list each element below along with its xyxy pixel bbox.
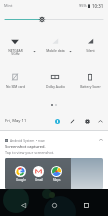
button[interactable]: Recents: [77, 196, 95, 214]
staticText: Mint: [4, 3, 13, 8]
staticText: Maps: [53, 178, 61, 182]
staticText: 10:31: [92, 3, 104, 9]
button[interactable]: Mobile data: [38, 37, 72, 52]
staticText: • now: [36, 138, 45, 142]
button[interactable]: Account: [52, 116, 62, 126]
staticText: 95%: [79, 3, 87, 8]
button[interactable]: Brightness: [0, 0, 108, 28]
button[interactable]: Silent: [73, 37, 107, 52]
staticText: NETGEAR 5GHz: [8, 48, 23, 56]
button[interactable]: No SIM card: [0, 73, 32, 88]
button[interactable]: Collapse notification: [98, 137, 104, 143]
button[interactable]: Edit: [67, 116, 77, 126]
button[interactable]: NETGEAR 5GHz: [0, 37, 32, 56]
staticText: Silent: [86, 48, 95, 52]
button[interactable]: Android System: [0, 130, 108, 189]
button[interactable]: Dolby Audio: [38, 73, 72, 88]
staticText: Android System: [10, 138, 35, 142]
staticText: Battery Saver: [80, 84, 101, 88]
staticText: Mobile data: [46, 48, 65, 52]
staticText: Dolby Audio: [46, 84, 65, 88]
staticText: Google: [16, 178, 26, 182]
staticText: No SIM card: [6, 84, 25, 88]
button[interactable]: Back: [14, 196, 32, 214]
button[interactable]: Home: [45, 196, 63, 214]
staticText: Tap to view your screenshot.: [5, 150, 55, 155]
button[interactable]: Collapse: [95, 116, 105, 126]
staticText: Gmail: [35, 178, 43, 182]
button[interactable]: Settings: [82, 116, 92, 126]
button[interactable]: Battery Saver: [73, 73, 107, 88]
staticText: Screenshot captured.: [5, 144, 46, 149]
staticText: Fri, May 11: [5, 118, 27, 124]
